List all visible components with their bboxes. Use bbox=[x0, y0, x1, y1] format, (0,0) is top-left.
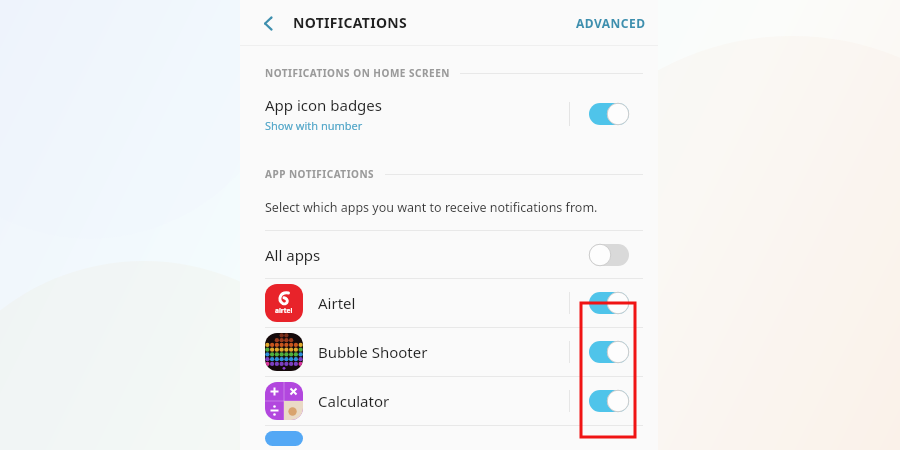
button[interactable]: airtel bbox=[240, 279, 658, 327]
button[interactable]: All apps bbox=[240, 231, 658, 278]
button[interactable]: Bubble Shooter toggle bbox=[589, 341, 629, 363]
staticText: Calculator bbox=[318, 391, 390, 411]
button[interactable]: ADVANCED bbox=[564, 6, 658, 40]
staticText: airtel bbox=[275, 306, 293, 315]
staticText: All apps bbox=[265, 245, 321, 265]
staticText: Select which apps you want to receive no… bbox=[265, 199, 598, 216]
button[interactable]: App icon badges bbox=[240, 83, 658, 145]
staticText: NOTIFICATIONS bbox=[293, 13, 407, 32]
staticText: Airtel bbox=[318, 293, 356, 313]
staticText: NOTIFICATIONS ON HOME SCREEN bbox=[265, 66, 450, 80]
button[interactable]: Bubble Shooter bbox=[240, 328, 658, 376]
button[interactable]: Back bbox=[250, 5, 286, 41]
staticText: Bubble Shooter bbox=[318, 342, 428, 362]
button[interactable]: App icon badges toggle bbox=[589, 103, 629, 125]
button[interactable]: Calculator bbox=[240, 377, 658, 425]
button[interactable]: All apps toggle bbox=[589, 244, 629, 266]
staticText: Show with number bbox=[265, 118, 363, 133]
button[interactable]: Calculator toggle bbox=[589, 390, 629, 412]
staticText: APP NOTIFICATIONS bbox=[265, 167, 375, 181]
staticText: ADVANCED bbox=[576, 15, 646, 31]
button[interactable]: Airtel toggle bbox=[589, 292, 629, 314]
staticText: App icon badges bbox=[265, 95, 382, 115]
